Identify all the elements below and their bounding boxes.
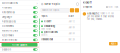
staticText: Search for topics — [42, 9, 59, 12]
staticText: Date — [68, 15, 73, 17]
staticText: Reply — [111, 42, 116, 45]
button[interactable]: Kickoff — [39, 19, 80, 24]
staticText: Dec 28 — [68, 38, 74, 41]
button[interactable]: Search for topics — [41, 8, 69, 12]
button[interactable]: Allow updates — [1, 43, 37, 47]
staticText: Anonymous — [2, 11, 15, 14]
staticText: Session — [2, 48, 11, 51]
button[interactable]: Filter — [70, 8, 74, 12]
staticText: Comments — [2, 25, 14, 28]
button[interactable]: Settings — [76, 3, 79, 5]
button[interactable]: Notifications — [39, 31, 80, 36]
button[interactable]: Team Reload — [0, 38, 39, 42]
staticText: new steps — [41, 28, 51, 30]
staticText: Approvals — [2, 34, 14, 37]
button[interactable]: Network Data — [0, 29, 39, 33]
staticText: Previews — [2, 6, 12, 9]
button[interactable]: Menu — [41, 3, 43, 5]
button[interactable]: Session — [0, 47, 39, 52]
staticText: Topics — [41, 15, 47, 17]
button[interactable]: Previews — [0, 6, 39, 10]
staticText: Let me know if that works — [87, 15, 114, 18]
staticText: Onboarding — [44, 25, 55, 28]
staticText: Notifications — [44, 31, 58, 34]
button[interactable]: Permissions — [0, 19, 39, 24]
staticText: Network Data — [2, 29, 18, 32]
staticText: Jan 09 — [68, 26, 74, 29]
button[interactable]: Language — [0, 15, 39, 19]
staticText: Inbound chat — [41, 38, 53, 41]
button[interactable]: Anonymous — [0, 10, 39, 14]
staticText: › — [36, 1, 37, 5]
staticText: Allow updates — [12, 43, 27, 46]
button[interactable]: Inbound chat — [39, 37, 80, 42]
staticText: Notifications — [2, 2, 18, 5]
button[interactable]: Reply — [109, 42, 118, 45]
button[interactable]: Compose — [75, 8, 79, 12]
staticText: drafts — [41, 34, 47, 36]
staticText: Ann Pacific — [87, 12, 99, 15]
button[interactable]: Notifications — [0, 1, 39, 5]
staticText: Jan 04 — [68, 32, 74, 35]
button[interactable]: Approvals — [0, 33, 39, 37]
button[interactable]: Start Topic — [106, 6, 118, 8]
staticText: Language — [2, 15, 12, 18]
staticText: New Topic — [44, 2, 60, 6]
button[interactable]: Comments — [0, 24, 39, 28]
staticText: Jan 12 — [68, 20, 74, 23]
staticText: replied 9:41 AM — [100, 12, 114, 15]
staticText: Permissions — [2, 20, 16, 23]
button[interactable]: Onboarding — [39, 25, 80, 30]
staticText: Kickoff — [44, 20, 52, 23]
staticText: 3 replies — [83, 6, 92, 8]
staticText: Start Topic — [108, 6, 118, 8]
staticText: for you, thanks. — [87, 18, 103, 21]
staticText: Kickoff — [83, 1, 92, 4]
staticText: Team Reload — [2, 38, 18, 41]
